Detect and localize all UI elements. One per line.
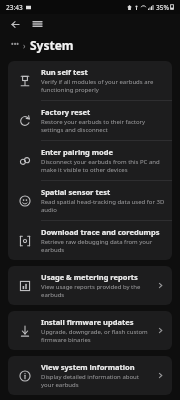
button[interactable]: Menu <box>29 16 45 32</box>
staticText: Download trace and coredumps <box>41 227 160 237</box>
staticText: Disconnect your earbuds from this PC and… <box>41 158 165 174</box>
staticText: Install firmware updates <box>41 317 134 327</box>
staticText: Verify if all modules of your earbuds ar… <box>41 78 165 94</box>
staticText: Spatial sensor test <box>41 187 111 197</box>
staticText: Restore your earbuds to their factory se… <box>41 118 165 134</box>
button[interactable]: Spatial sensor test <box>8 181 172 220</box>
staticText: System <box>30 37 74 53</box>
button[interactable]: Run self test <box>8 61 172 100</box>
button[interactable]: More <box>11 40 19 50</box>
staticText: ••• <box>11 40 19 50</box>
staticText: Read spatial head-tracking data used for… <box>41 198 165 214</box>
staticText: › <box>23 40 26 51</box>
staticText: View usage reports provided by the earbu… <box>41 283 152 299</box>
button[interactable]: View system information <box>8 356 172 395</box>
button[interactable]: Back <box>7 16 23 32</box>
button[interactable]: Download trace and coredumps <box>8 221 172 260</box>
staticText: Retrieve raw debugging data from your ea… <box>41 238 165 254</box>
button[interactable]: Factory reset <box>8 101 172 140</box>
staticText: View system information <box>41 362 135 372</box>
button[interactable]: Usage & metering reports <box>8 266 172 305</box>
staticText: 23:43 <box>6 3 23 12</box>
button[interactable]: Enter pairing mode <box>8 141 172 180</box>
staticText: Run self test <box>41 67 88 77</box>
staticText: Factory reset <box>41 107 91 117</box>
staticText: Usage & metering reports <box>41 272 138 282</box>
button[interactable]: Install firmware updates <box>8 311 172 350</box>
staticText: Enter pairing mode <box>41 147 113 157</box>
staticText: 35% <box>156 3 169 12</box>
staticText: Display detailed information about your … <box>41 373 152 389</box>
staticText: Upgrade, downgrade, or flash custom firm… <box>41 328 152 344</box>
